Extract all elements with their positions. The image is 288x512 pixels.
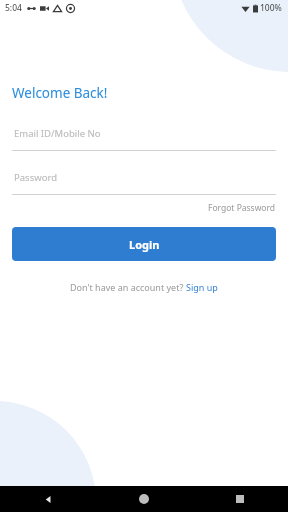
button[interactable]: Home bbox=[131, 486, 157, 512]
staticText: Login bbox=[129, 237, 160, 252]
button[interactable]: Forgot Password bbox=[206, 199, 278, 217]
button[interactable]: Sign up bbox=[186, 278, 218, 296]
button[interactable]: Login bbox=[12, 227, 276, 261]
staticText: 100% bbox=[260, 2, 282, 14]
staticText: Password bbox=[14, 171, 57, 184]
staticText: 5:04 bbox=[5, 2, 22, 14]
button[interactable]: Email ID/Mobile No bbox=[0, 127, 288, 151]
button[interactable]: Back bbox=[35, 486, 61, 512]
staticText: Don't have an account yet? bbox=[70, 281, 186, 293]
button[interactable]: Password bbox=[0, 171, 288, 195]
staticText: Email ID/Mobile No bbox=[14, 127, 101, 140]
staticText: Welcome Back! bbox=[12, 84, 108, 102]
button[interactable]: Recents bbox=[227, 486, 253, 512]
